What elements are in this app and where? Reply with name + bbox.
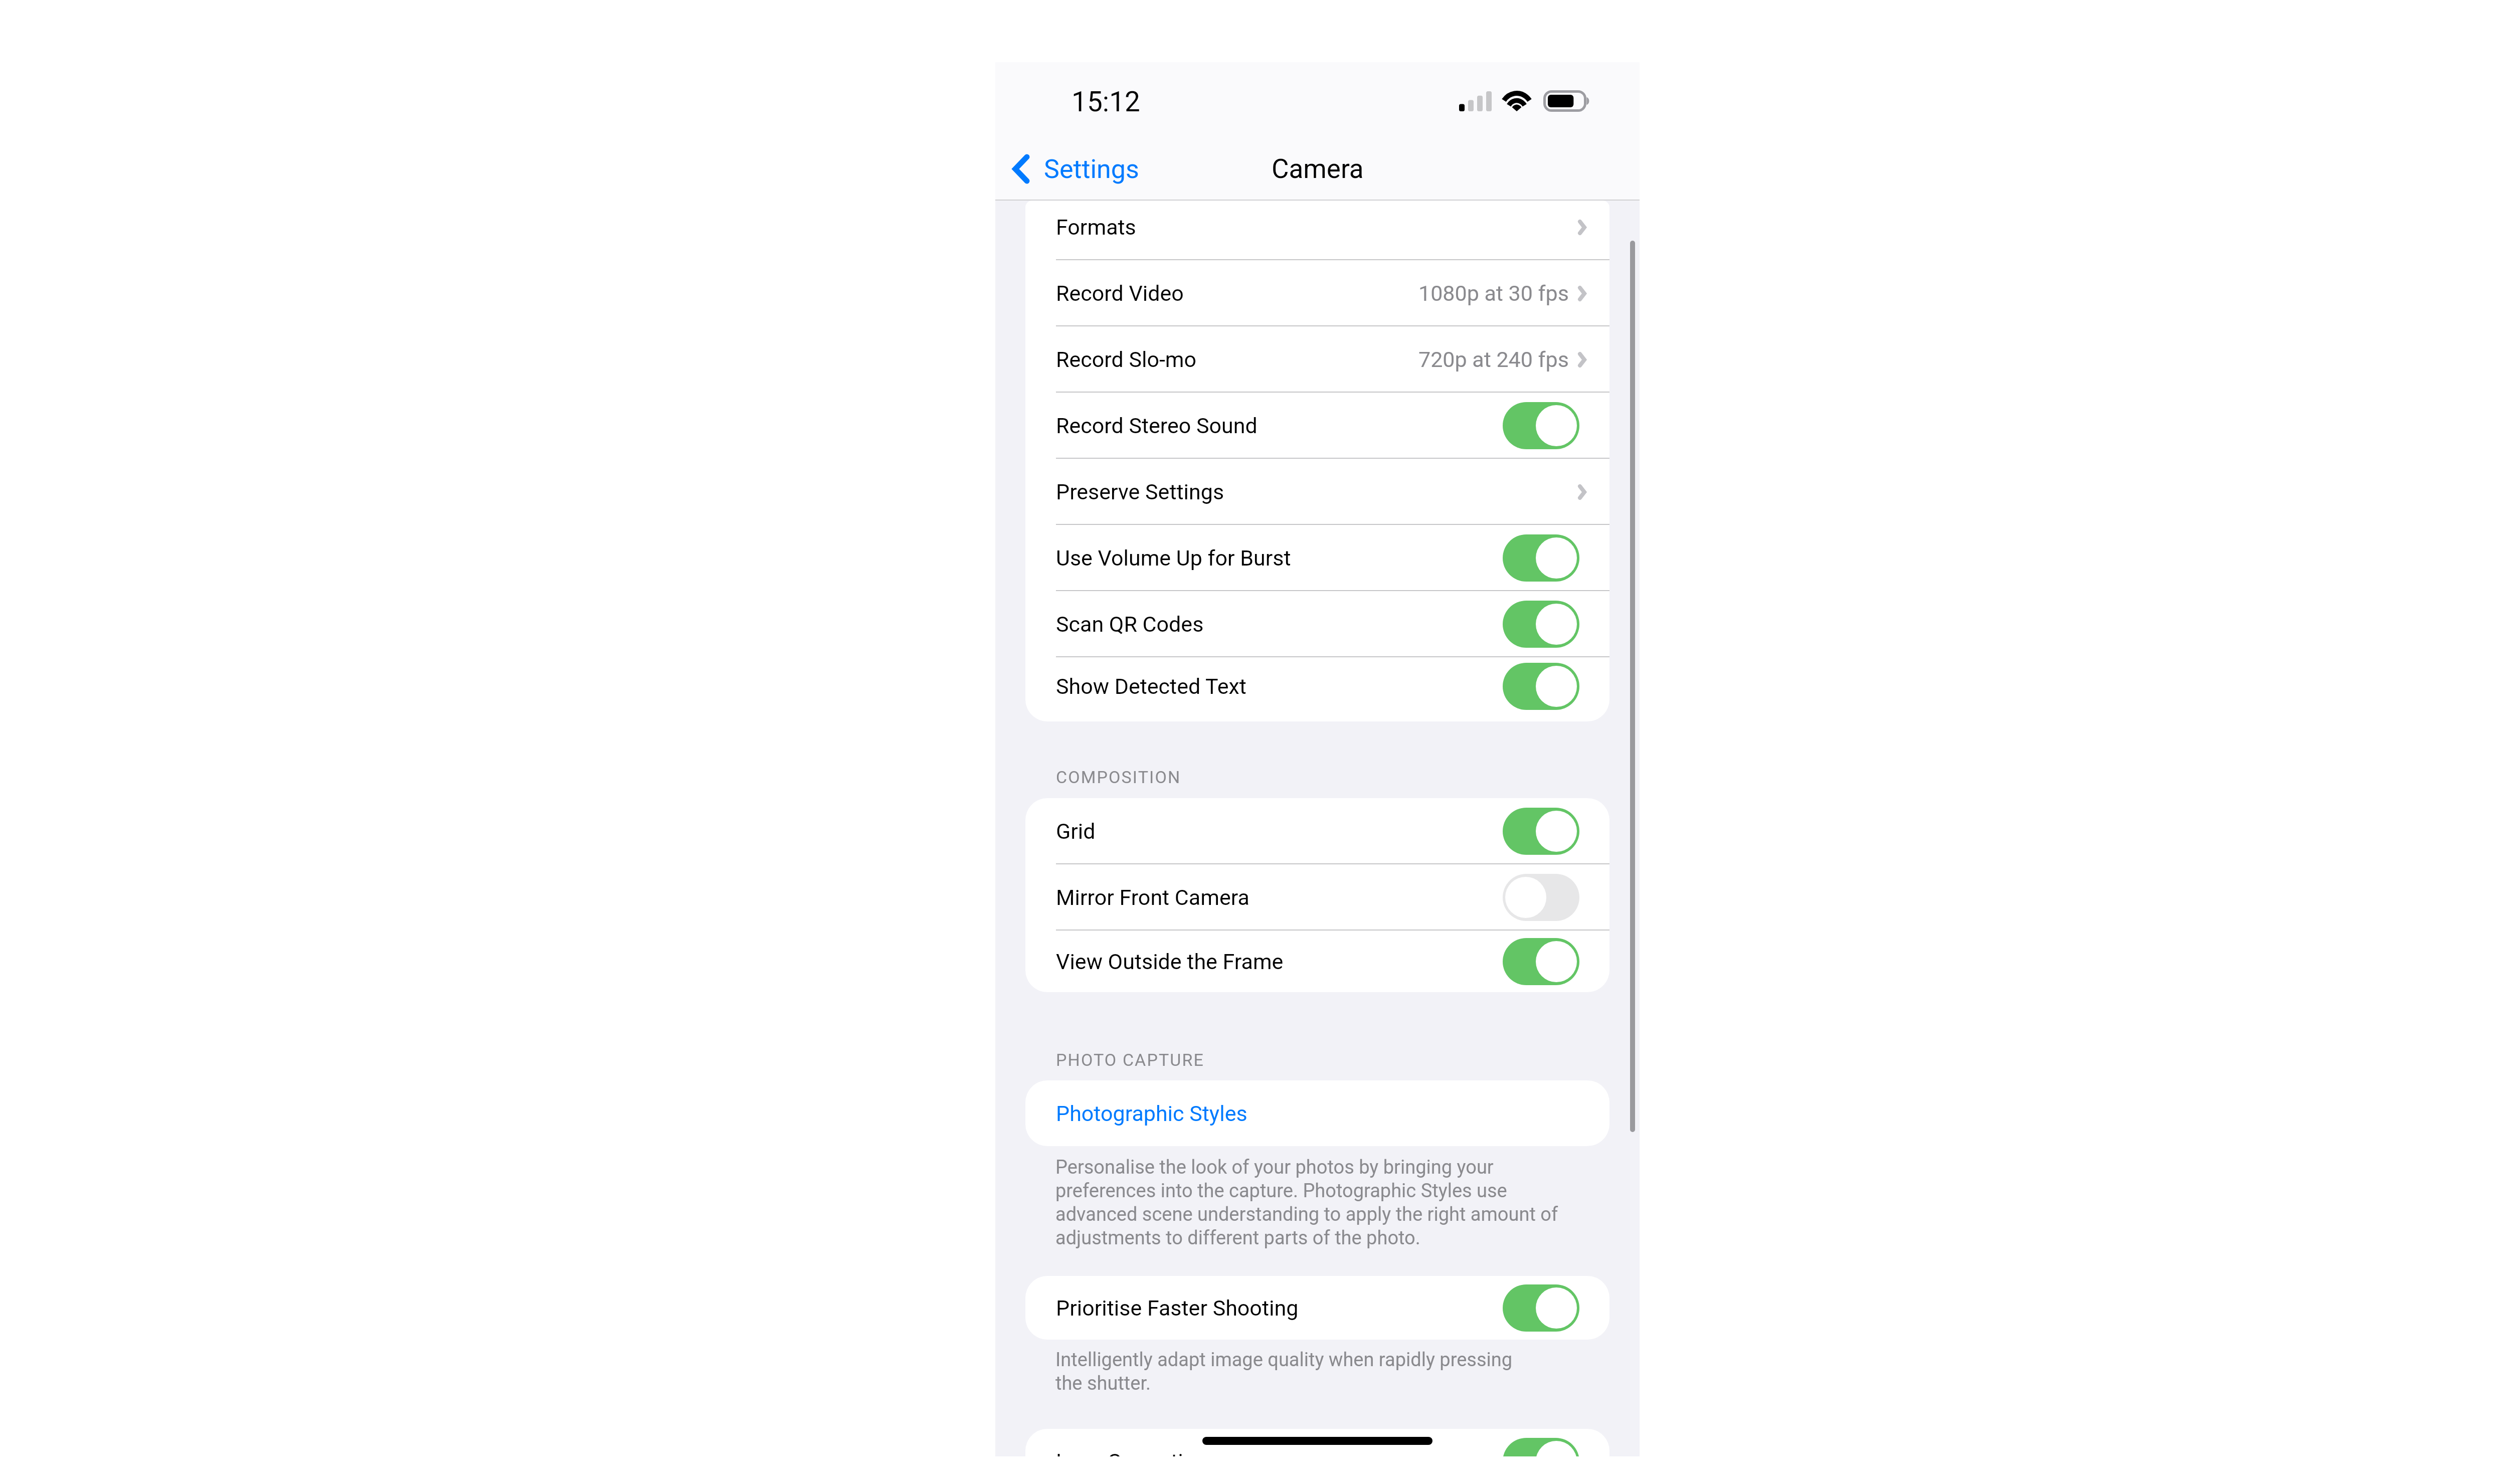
staticText: 720p at 240 fps	[1418, 347, 1569, 372]
button[interactable]: Photographic Styles	[1025, 1080, 1609, 1146]
button[interactable]: Grid	[1025, 798, 1609, 864]
staticText: Camera	[1272, 153, 1364, 184]
staticText: Record Slo-mo	[1056, 347, 1197, 372]
staticText: COMPOSITION	[1056, 767, 1181, 787]
staticText: Scan QR Codes	[1056, 612, 1204, 637]
staticText: Personalise the look of your photos by b…	[1055, 1156, 1617, 1249]
staticText: Settings	[1044, 154, 1139, 184]
button[interactable]: Off	[1503, 874, 1579, 921]
button[interactable]: On	[1503, 1438, 1579, 1456]
button[interactable]: Prioritise Faster Shooting	[1025, 1276, 1609, 1340]
button[interactable]: Lens Correction	[1025, 1429, 1609, 1456]
button[interactable]: Show Detected Text	[1025, 657, 1609, 715]
button[interactable]: On	[1503, 808, 1579, 855]
staticText: 1080p at 30 fps	[1418, 281, 1569, 306]
button[interactable]: View Outside the Frame	[1025, 931, 1609, 992]
staticText: PHOTO CAPTURE	[1056, 1050, 1204, 1070]
button[interactable]: Preserve Settings	[1025, 459, 1609, 525]
staticText: Formats	[1056, 215, 1136, 240]
button[interactable]: On	[1503, 938, 1579, 985]
button[interactable]: On	[1503, 663, 1579, 710]
button[interactable]: Record Slo-mo	[1025, 326, 1609, 393]
button[interactable]: Back to Settings	[995, 130, 1151, 208]
button[interactable]: Formats	[1025, 201, 1609, 260]
button[interactable]: Use Volume Up for Burst	[1025, 525, 1609, 591]
button[interactable]: Mirror Front Camera	[1025, 864, 1609, 931]
staticText: 15:12	[1071, 86, 1140, 118]
button[interactable]: On	[1503, 402, 1579, 449]
staticText: Show Detected Text	[1056, 674, 1246, 699]
staticText: Prioritise Faster Shooting	[1056, 1295, 1299, 1321]
button[interactable]: On	[1503, 534, 1579, 582]
staticText: Mirror Front Camera	[1056, 885, 1249, 910]
button[interactable]: On	[1503, 601, 1579, 648]
button[interactable]: Scan QR Codes	[1025, 591, 1609, 657]
staticText: Use Volume Up for Burst	[1056, 545, 1291, 571]
staticText: Preserve Settings	[1056, 479, 1224, 504]
staticText: View Outside the Frame	[1056, 949, 1284, 974]
staticText: Lens Correction	[1056, 1449, 1207, 1456]
button[interactable]: Record Video	[1025, 260, 1609, 326]
button[interactable]: On	[1503, 1284, 1579, 1332]
staticText: Intelligently adapt image quality when r…	[1055, 1349, 1617, 1394]
staticText: Grid	[1056, 819, 1096, 844]
staticText: Record Video	[1056, 281, 1184, 306]
staticText: Record Stereo Sound	[1056, 413, 1258, 438]
button[interactable]: Record Stereo Sound	[1025, 393, 1609, 459]
staticText: Photographic Styles	[1056, 1101, 1247, 1126]
